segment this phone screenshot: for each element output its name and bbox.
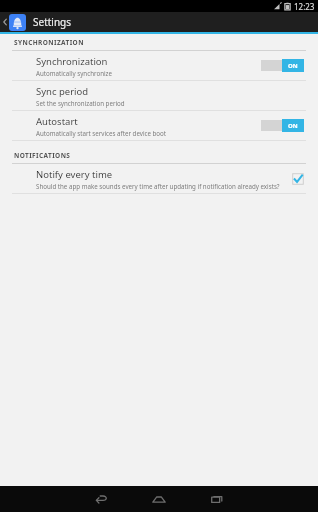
staticText: ON [288, 62, 298, 70]
staticText: Automatically synchronize [36, 69, 112, 77]
button[interactable]: Navigate up [0, 12, 318, 32]
staticText: Notify every time [36, 168, 113, 181]
staticText: ON [288, 122, 298, 130]
staticText: Autostart [36, 115, 78, 128]
button[interactable]: Toggle on [261, 119, 304, 132]
staticText: NOTIFICATIONS [14, 151, 71, 160]
button[interactable]: Sync period [0, 81, 318, 110]
button[interactable]: Back [79, 486, 123, 512]
button[interactable]: Notify every time [0, 164, 318, 193]
button[interactable]: Autostart [0, 111, 318, 140]
staticText: Settings [33, 15, 72, 29]
button[interactable]: Home [137, 486, 181, 512]
other: Navigate up [2, 16, 8, 28]
staticText: 12:23 [294, 1, 315, 12]
staticText: Set the synchronization period [36, 99, 125, 107]
staticText: Synchronization [36, 55, 108, 68]
button[interactable]: Synchronization [0, 51, 318, 80]
button[interactable]: Toggle on [261, 59, 304, 72]
staticText: Automatically start services after devic… [36, 129, 167, 137]
staticText: Sync period [36, 85, 89, 98]
staticText: Should the app make sounds every time af… [36, 182, 280, 190]
button[interactable]: Notify every time checkbox, checked [291, 172, 304, 185]
staticText: SYNCHRONIZATION [14, 38, 84, 47]
button[interactable]: Recent apps [195, 486, 239, 512]
